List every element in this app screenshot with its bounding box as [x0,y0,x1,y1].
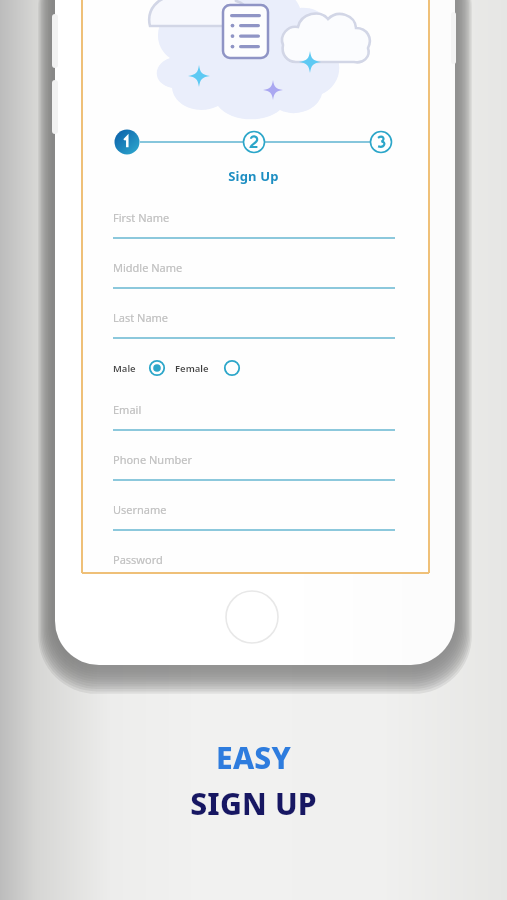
staticText: First Name [113,210,170,225]
button[interactable]: Female [173,357,245,381]
staticText: Username [113,502,167,517]
button[interactable]: Username [113,495,395,535]
button[interactable]: Male [110,357,172,381]
staticText: SIGN UP [0,783,507,831]
button[interactable]: Step 3 [369,130,394,155]
staticText: Middle Name [113,260,183,275]
button[interactable]: Home button [226,580,278,632]
staticText: Password [113,552,163,567]
button[interactable]: Step 2 [242,130,267,155]
button[interactable]: Last Name [113,303,395,343]
button[interactable]: Middle Name [113,253,395,293]
staticText: Sign Up [0,167,507,188]
staticText: Last Name [113,310,169,325]
button[interactable]: Password [113,545,395,573]
button[interactable]: First Name [113,203,395,243]
button[interactable]: Email [113,395,395,435]
button[interactable]: Phone Number [113,445,395,485]
staticText: Female [175,362,209,375]
staticText: Male [113,362,136,375]
staticText: Phone Number [113,452,192,467]
staticText: EASY [0,737,507,785]
staticText: Email [113,402,142,417]
button[interactable]: Step 1 Sign Up [115,130,140,155]
